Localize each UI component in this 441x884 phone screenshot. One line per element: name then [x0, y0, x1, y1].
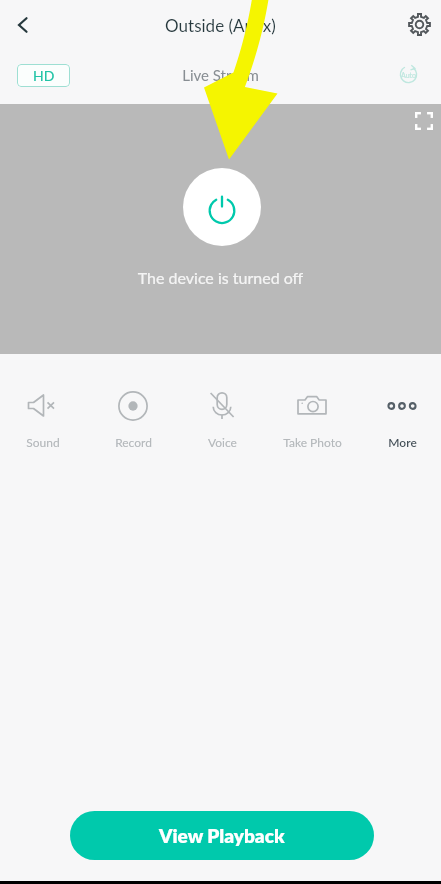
staticText: The device is turned off — [0, 268, 441, 287]
staticText: Take Photo — [283, 435, 342, 449]
staticText: HD — [33, 67, 55, 84]
button[interactable]: View Playback — [70, 811, 374, 860]
button[interactable]: HD — [17, 64, 70, 87]
button[interactable]: Sound — [1, 385, 85, 449]
button[interactable]: Settings — [397, 2, 441, 46]
button[interactable]: Turn device on — [183, 168, 261, 246]
button[interactable]: Full screen — [408, 105, 440, 137]
staticText: Outside (Apex) — [0, 15, 441, 35]
staticText: Auto — [401, 71, 417, 79]
button[interactable]: Voice — [180, 385, 264, 449]
staticText: View Playback — [159, 824, 285, 847]
button[interactable]: Back — [3, 5, 43, 45]
button[interactable]: Auto night vision — [392, 58, 425, 91]
button[interactable]: Record — [91, 385, 175, 449]
staticText: Voice — [208, 435, 237, 449]
button[interactable]: More — [360, 385, 441, 449]
staticText: More — [388, 435, 417, 449]
button[interactable]: Take Photo — [270, 385, 354, 449]
staticText: Record — [115, 435, 152, 449]
staticText: Live Stream — [0, 66, 441, 84]
staticText: Sound — [26, 435, 60, 449]
